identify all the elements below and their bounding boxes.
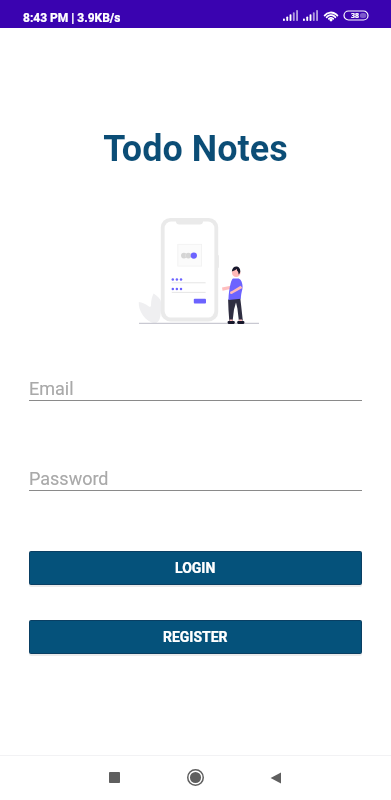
staticText: Email (29, 378, 74, 399)
staticText: Password (29, 468, 109, 489)
staticText: REGISTER (163, 629, 228, 645)
button[interactable]: REGISTER (30, 621, 361, 653)
button[interactable]: Password (29, 468, 362, 491)
staticText: 38 (351, 11, 360, 20)
button[interactable]: Recents (92, 755, 137, 800)
staticText: 8:43 PM | 3.9KB/s (23, 11, 121, 25)
staticText: LOGIN (175, 560, 216, 576)
button[interactable]: Home (173, 755, 218, 800)
button[interactable]: Back (253, 755, 298, 800)
staticText: Todo Notes (0, 128, 391, 170)
button[interactable]: LOGIN (30, 552, 361, 584)
button[interactable]: Email (29, 378, 362, 401)
